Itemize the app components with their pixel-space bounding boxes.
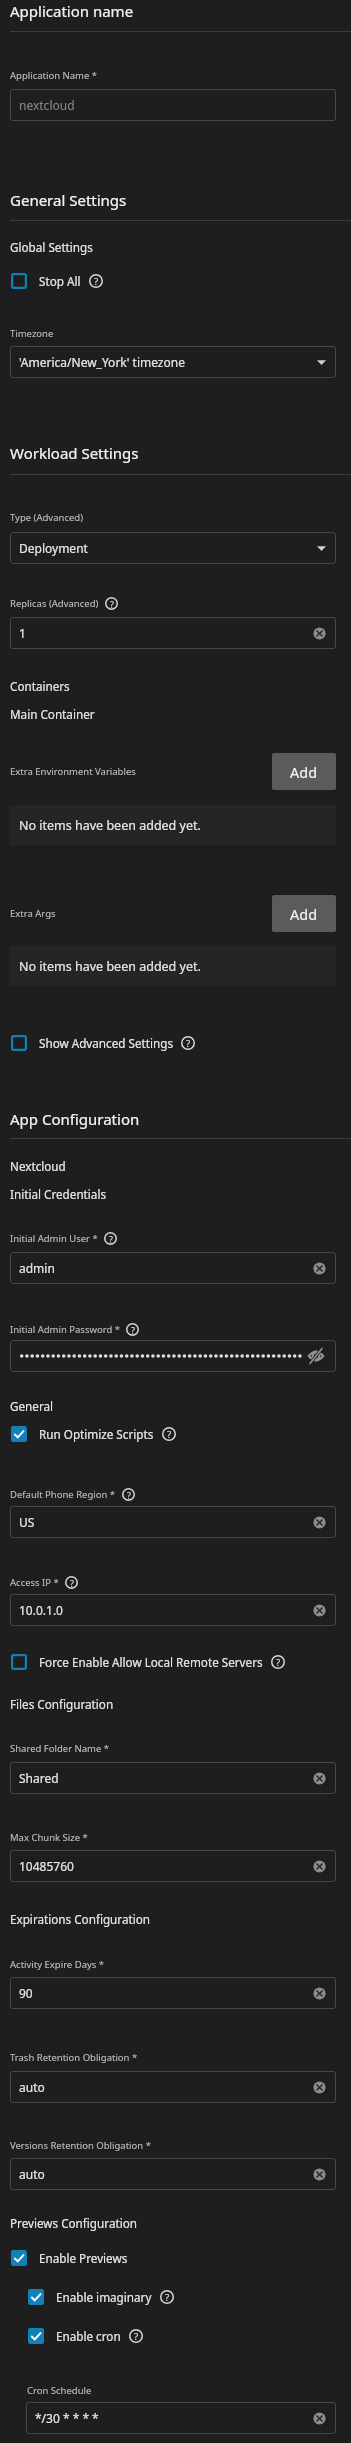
button[interactable]: Enable cron (28, 2328, 143, 2344)
button[interactable]: admin (10, 1252, 336, 1284)
staticText: ? (165, 2291, 170, 2304)
staticText: admin (19, 1260, 55, 1276)
staticText: Expirations Configuration (10, 1911, 151, 1927)
other: Clear (313, 2412, 326, 2425)
staticText: Containers (10, 678, 70, 694)
button[interactable]: Enable Previews (11, 2250, 128, 2266)
button[interactable]: auto (10, 2158, 336, 2190)
staticText: Timezone (10, 327, 54, 340)
button[interactable]: Show Advanced Settings (11, 1035, 195, 1051)
staticText: Run Optimize Scripts (39, 1426, 154, 1442)
button[interactable]: Show password (10, 1340, 336, 1372)
staticText: 10.0.1.0 (19, 1602, 63, 1618)
other: Help (89, 274, 103, 288)
button[interactable]: */30 * * * * (26, 2402, 336, 2434)
other: Help (271, 1655, 285, 1669)
other: Help (122, 1488, 135, 1501)
staticText: Replicas (Advanced) (10, 597, 99, 610)
other: Clear (313, 1987, 326, 2000)
staticText: Initial Admin Password * (10, 1323, 120, 1336)
staticText: Application Name * (10, 69, 98, 82)
staticText: App Configuration (10, 1109, 140, 1129)
other: Clear (313, 1604, 326, 1617)
button[interactable]: Run Optimize Scripts (11, 1426, 176, 1442)
staticText: Cron Schedule (27, 2384, 92, 2397)
staticText: Show Advanced Settings (39, 1035, 173, 1051)
staticText: ? (94, 275, 99, 288)
other: Clear (313, 1772, 326, 1785)
staticText: Versions Retention Obligation * (10, 2139, 151, 2152)
other: Show password (308, 1348, 324, 1364)
button[interactable]: 10485760 (10, 1850, 336, 1882)
staticText: Max Chunk Size * (10, 1831, 88, 1844)
button[interactable]: Enable imaginary (28, 2289, 174, 2305)
staticText: Previews Configuration (10, 2215, 137, 2231)
other: Help (162, 1427, 176, 1441)
staticText: 10485760 (19, 1858, 74, 1874)
staticText: Initial Admin User * (10, 1232, 98, 1245)
staticText: */30 * * * * (35, 2410, 99, 2426)
button[interactable]: 'America/New_York' timezone (10, 346, 336, 378)
other: Clear (313, 627, 326, 640)
button[interactable]: Stop All (11, 273, 103, 289)
staticText: US (19, 1514, 35, 1530)
staticText: Default Phone Region * (10, 1488, 116, 1501)
other: Clear (313, 2168, 326, 2181)
staticText: Add (290, 904, 318, 924)
staticText: Files Configuration (10, 1696, 114, 1712)
other: Clear (313, 1516, 326, 1529)
staticText: Extra Environment Variables (10, 765, 136, 778)
staticText: 90 (19, 1985, 33, 2001)
other: Help (104, 1232, 117, 1245)
staticText: No items have been added yet. (19, 817, 201, 834)
staticText: Initial Credentials (10, 1186, 107, 1202)
staticText: 1 (19, 625, 26, 641)
staticText: Enable imaginary (56, 2289, 152, 2305)
staticText: ? (186, 1037, 191, 1050)
staticText: auto (19, 2079, 45, 2095)
staticText: Global Settings (10, 239, 93, 255)
staticText: ? (134, 2330, 139, 2343)
staticText: Shared Folder Name * (10, 1742, 110, 1755)
button[interactable]: Shared (10, 1762, 336, 1794)
staticText: Nextcloud (10, 1158, 66, 1174)
other: Help (126, 1323, 139, 1336)
button[interactable]: Add (272, 895, 336, 932)
other: Clear (313, 1262, 326, 1275)
button[interactable]: nextcloud (10, 89, 336, 121)
staticText: 'America/New_York' timezone (19, 354, 185, 370)
other: Help (129, 2329, 143, 2343)
staticText: General (10, 1398, 54, 1414)
staticText: ? (131, 1324, 135, 1336)
staticText: Enable Previews (39, 2250, 128, 2266)
staticText: Stop All (39, 273, 81, 289)
button[interactable]: 10.0.1.0 (10, 1594, 336, 1626)
button[interactable]: Force Enable Allow Local Remote Servers (11, 1654, 285, 1670)
staticText: Workload Settings (10, 443, 139, 463)
other: Clear (313, 1860, 326, 1873)
staticText: Type (Advanced) (10, 511, 84, 524)
other: Clear (313, 2081, 326, 2094)
staticText: ? (167, 1428, 172, 1441)
staticText: General Settings (10, 190, 127, 210)
button[interactable]: auto (10, 2071, 336, 2103)
staticText: Shared (19, 1770, 59, 1786)
other: Help (160, 2290, 174, 2304)
staticText: Access IP * (10, 1576, 59, 1589)
staticText: auto (19, 2166, 45, 2182)
staticText: Force Enable Allow Local Remote Servers (39, 1654, 263, 1670)
other: Help (65, 1576, 78, 1589)
staticText: Add (290, 762, 318, 782)
button[interactable]: Deployment (10, 532, 336, 564)
staticText: ? (110, 598, 114, 610)
staticText: ? (70, 1577, 74, 1589)
staticText: Application name (10, 1, 134, 21)
staticText: Deployment (19, 540, 88, 556)
button[interactable]: 1 (10, 617, 336, 649)
button[interactable]: Add (272, 753, 336, 790)
button[interactable]: 90 (10, 1977, 336, 2009)
staticText: ? (276, 1656, 281, 1669)
button[interactable]: US (10, 1506, 336, 1538)
other: Help (105, 597, 118, 610)
staticText: Trash Retention Obligation * (10, 2051, 138, 2064)
